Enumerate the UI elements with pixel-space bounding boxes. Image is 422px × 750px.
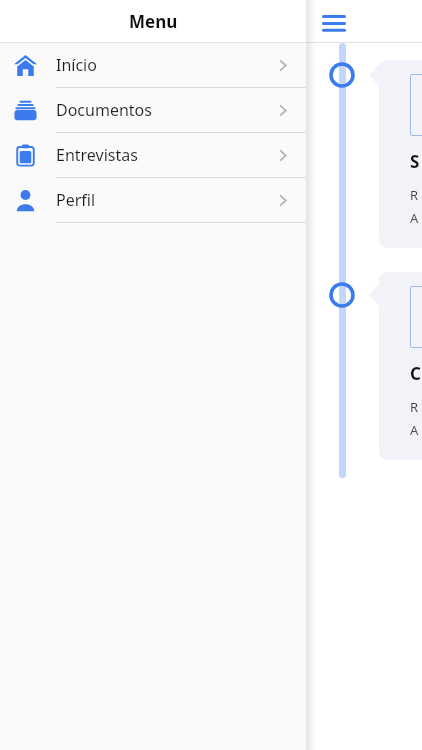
staticText: C bbox=[410, 362, 421, 385]
button[interactable]: Início bbox=[0, 43, 306, 87]
staticText: A bbox=[410, 421, 419, 439]
staticText: Documentos bbox=[56, 99, 275, 121]
staticText: Perfil bbox=[56, 189, 275, 211]
staticText: S bbox=[410, 150, 420, 173]
staticText: R bbox=[410, 398, 419, 416]
staticText: A bbox=[410, 209, 419, 227]
staticText: R bbox=[410, 186, 419, 204]
staticText: Entrevistas bbox=[56, 144, 275, 166]
button[interactable]: S bbox=[369, 60, 422, 248]
button[interactable]: Entrevistas bbox=[0, 133, 306, 177]
button[interactable]: C bbox=[369, 272, 422, 460]
staticText: Menu bbox=[129, 10, 178, 33]
staticText: Início bbox=[56, 54, 275, 76]
button[interactable]: Documentos bbox=[0, 88, 306, 132]
button[interactable]: Open navigation menu bbox=[314, 3, 354, 43]
button[interactable]: Perfil bbox=[0, 178, 306, 222]
